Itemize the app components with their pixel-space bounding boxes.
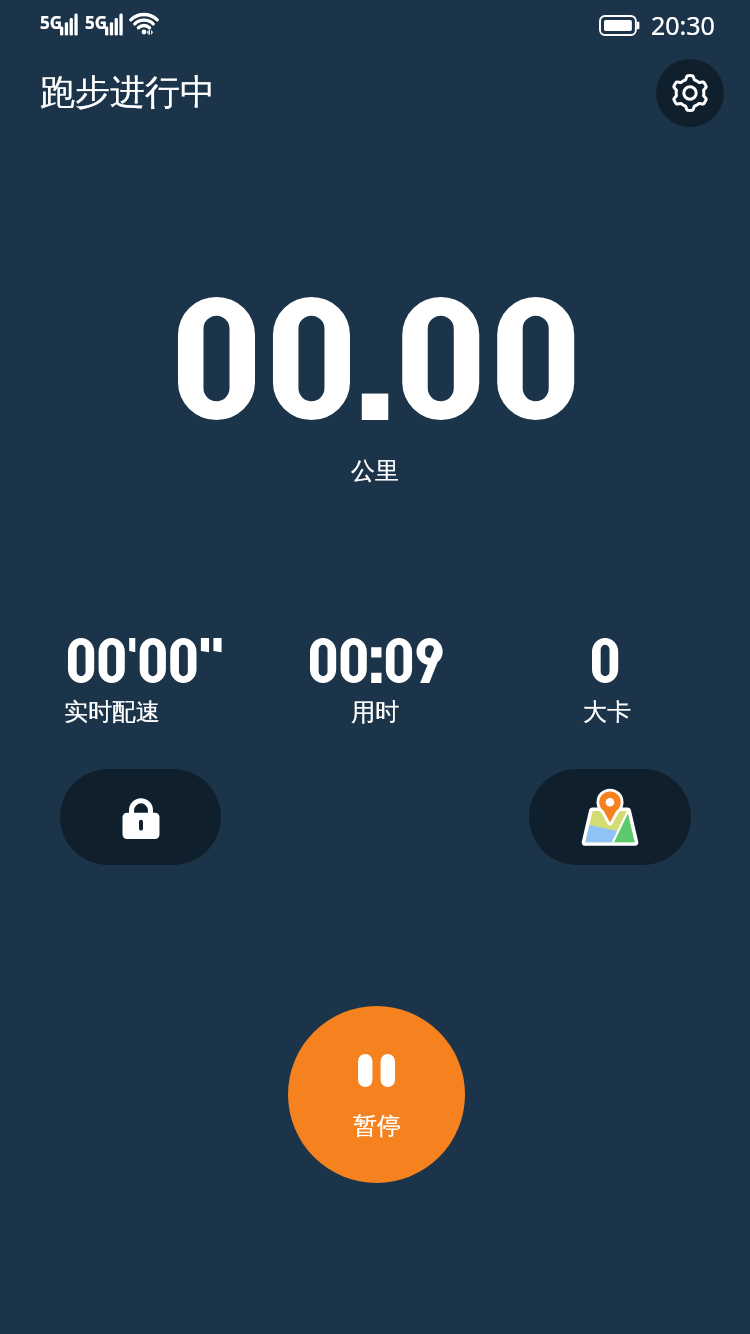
staticText: 公里	[351, 456, 399, 486]
staticText: 暂停	[353, 1111, 401, 1141]
button[interactable]: Settings	[656, 59, 724, 127]
staticText: 20:30	[651, 8, 715, 42]
staticText: 用时	[351, 697, 399, 727]
staticText: 5G	[40, 11, 63, 34]
staticText: 5G	[85, 11, 108, 34]
staticText: 跑步进行中	[40, 70, 215, 114]
button[interactable]: Lock screen	[60, 769, 221, 865]
button[interactable]: 暂停	[288, 1006, 465, 1183]
staticText: 实时配速	[64, 697, 160, 727]
staticText: 大卡	[583, 697, 631, 727]
button[interactable]: Show map	[529, 769, 691, 865]
